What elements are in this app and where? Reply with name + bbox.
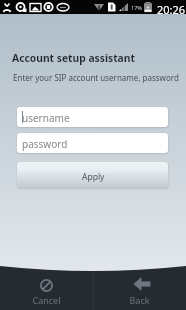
button[interactable]: password [17,133,168,153]
staticText: password [22,137,68,151]
button[interactable]: Back [93,262,186,310]
staticText: username [22,111,70,125]
staticText: Account setup assistant [12,51,135,65]
staticText: 20:26 [157,2,186,16]
staticText: Back [93,294,186,306]
button[interactable]: Cancel [0,262,93,310]
staticText: Cancel [0,294,93,306]
staticText: Apply [82,171,105,183]
button[interactable]: Apply [17,162,168,188]
button[interactable]: username [17,107,168,127]
staticText: Enter your SIP account username, passwor… [13,72,179,83]
staticText: 17% [131,4,142,11]
